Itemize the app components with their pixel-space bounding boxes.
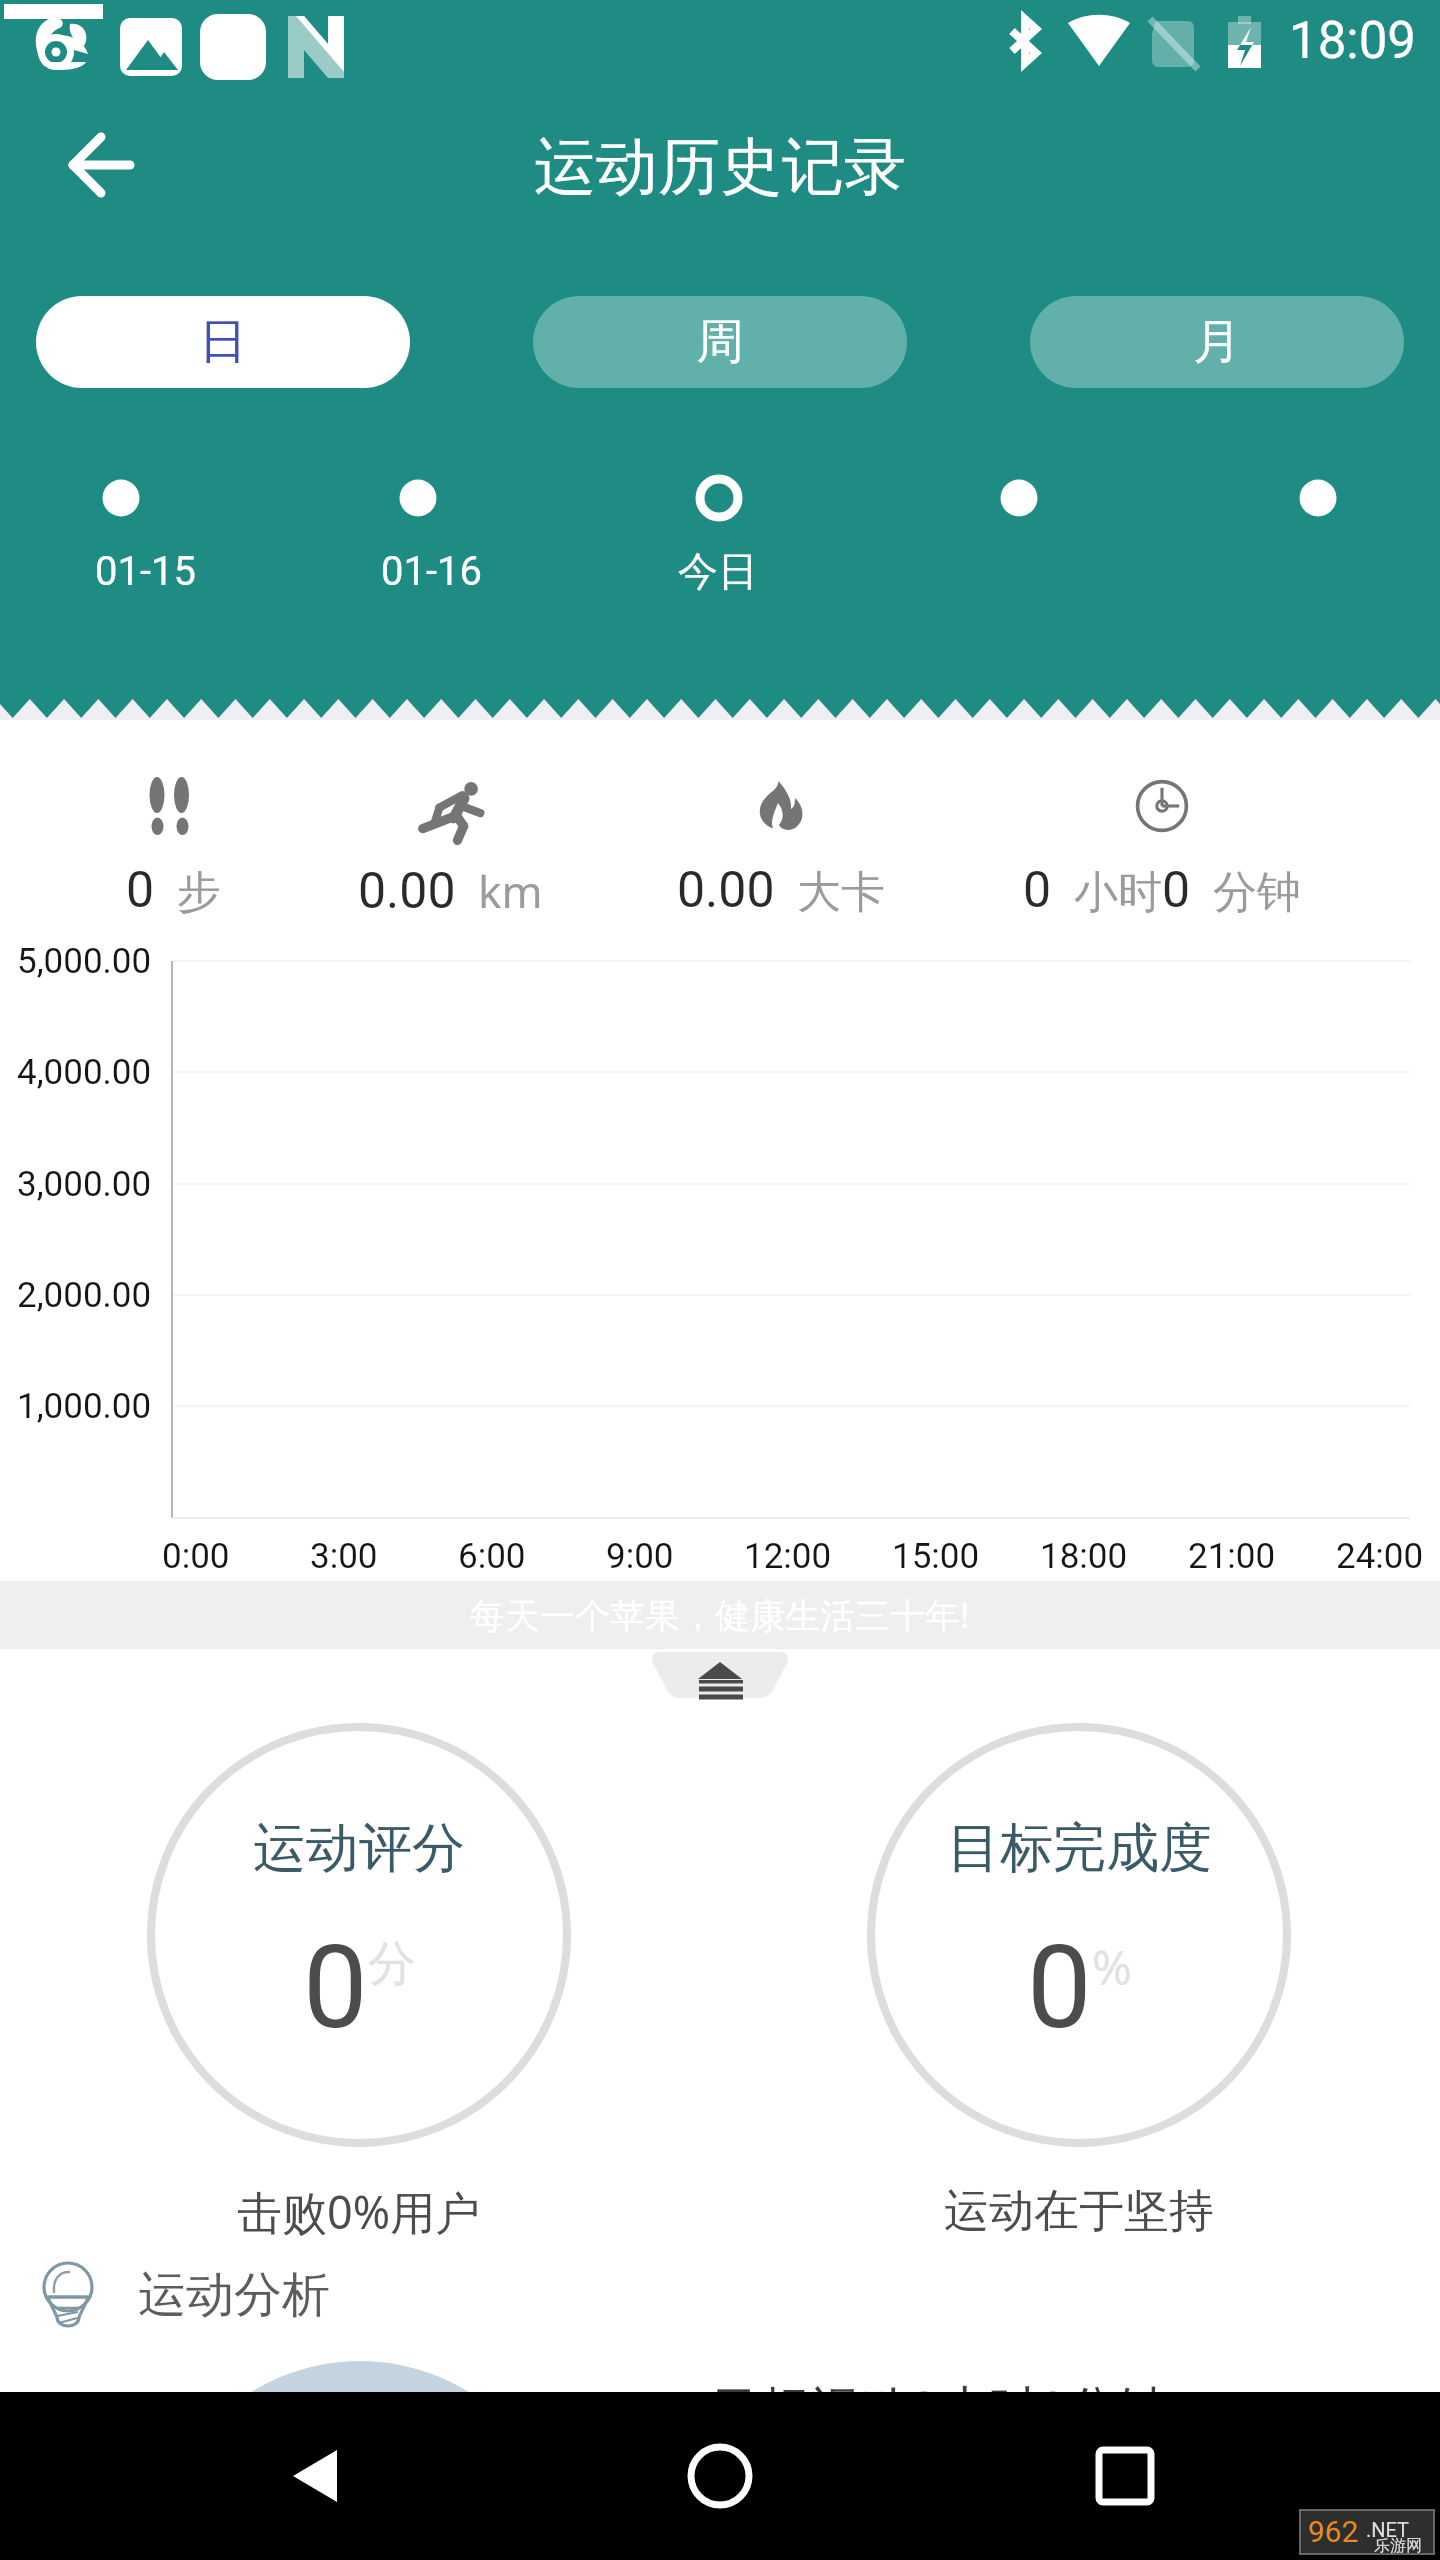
staticText: 运动评分: [253, 1815, 465, 1882]
staticText: 目标运动2小时0分钟: [710, 2374, 1168, 2442]
staticText: 24:00: [1336, 1536, 1424, 1577]
staticText: 2,000.00: [17, 1275, 152, 1316]
staticText: 0: [1027, 1920, 1092, 2055]
staticText: 1,000.00: [17, 1386, 152, 1427]
staticText: 分钟: [1213, 865, 1301, 920]
staticText: 9:00: [606, 1536, 674, 1577]
button[interactable]: [21, 455, 221, 595]
staticText: 大卡: [797, 865, 885, 920]
staticText: km: [478, 861, 543, 921]
button[interactable]: Recents: [1070, 2436, 1180, 2516]
button[interactable]: Home: [665, 2436, 775, 2516]
button[interactable]: 周: [533, 296, 907, 388]
staticText: 0: [1162, 861, 1191, 920]
staticText: 18:09: [1289, 11, 1417, 71]
staticText: 月: [1193, 312, 1241, 372]
staticText: 目标完成度: [947, 1815, 1212, 1882]
staticText: 6:00: [458, 1536, 526, 1577]
staticText: 小时: [1074, 865, 1162, 920]
staticText: 0.00: [358, 862, 456, 921]
staticText: 日: [199, 312, 247, 372]
button[interactable]: Expand: [651, 1652, 789, 1698]
staticText: 01-15: [95, 548, 196, 595]
button[interactable]: 月: [1030, 296, 1404, 388]
staticText: 乐游网: [1374, 2536, 1422, 2556]
staticText: 运动历史记录: [534, 128, 906, 206]
staticText: 21:00: [1188, 1536, 1276, 1577]
staticText: 4,000.00: [17, 1052, 152, 1093]
staticText: %: [1092, 1934, 1132, 1999]
staticText: 运动分析: [138, 2265, 330, 2325]
button[interactable]: [147, 1723, 571, 2147]
staticText: 分: [368, 1934, 416, 1994]
staticText: 5,000.00: [17, 941, 152, 982]
button[interactable]: [619, 455, 819, 595]
button[interactable]: 0: [0, 777, 373, 925]
staticText: 0: [1023, 861, 1052, 920]
button[interactable]: 0.00: [581, 777, 981, 925]
button[interactable]: [919, 455, 1119, 595]
staticText: 3:00: [310, 1536, 378, 1577]
staticText: 01-16: [381, 548, 482, 595]
staticText: 击败0%用户: [237, 2181, 481, 2242]
staticText: 每天一个苹果，健康生活三十年!: [470, 1591, 970, 1639]
button[interactable]: Back: [48, 115, 153, 215]
staticText: 周: [696, 312, 744, 372]
staticText: 今日: [678, 546, 758, 596]
button[interactable]: 0: [962, 777, 1362, 925]
staticText: 0:00: [162, 1536, 230, 1577]
staticText: 15:00: [892, 1536, 980, 1577]
staticText: 运动在于坚持: [944, 2183, 1214, 2240]
staticText: 0: [303, 1920, 368, 2055]
button[interactable]: 0.00: [250, 777, 650, 925]
staticText: 3,000.00: [17, 1164, 152, 1205]
button[interactable]: [318, 455, 518, 595]
staticText: 0.00: [677, 861, 775, 920]
staticText: .NET: [1366, 2518, 1410, 2541]
staticText: 0: [126, 861, 155, 920]
staticText: 18:00: [1040, 1536, 1128, 1577]
button[interactable]: [1218, 455, 1418, 595]
staticText: 962: [1308, 2514, 1359, 2549]
button[interactable]: [867, 1723, 1291, 2147]
button[interactable]: 日: [36, 296, 410, 388]
button[interactable]: 运动分析: [0, 2252, 1440, 2338]
staticText: 步: [177, 865, 221, 920]
staticText: 12:00: [744, 1536, 832, 1577]
button[interactable]: Back: [262, 2436, 372, 2516]
